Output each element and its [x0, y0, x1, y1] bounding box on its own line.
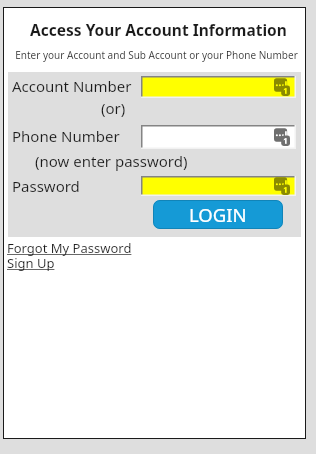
- staticText: Account Number: [12, 76, 132, 96]
- staticText: (now enter password): [35, 151, 188, 171]
- staticText: Password: [12, 176, 80, 196]
- other: Autofill saved login: [274, 128, 290, 146]
- button[interactable]: Autofill saved login: [141, 176, 296, 196]
- button[interactable]: Forgot My Password: [7, 239, 132, 257]
- other: Autofill saved login: [274, 78, 290, 96]
- staticText: Phone Number: [12, 126, 120, 146]
- button[interactable]: Autofill saved login: [141, 125, 296, 149]
- button[interactable]: Autofill saved login: [141, 76, 296, 98]
- button[interactable]: Sign Up: [7, 254, 55, 272]
- button[interactable]: LOGIN: [153, 200, 283, 229]
- staticText: (or): [101, 98, 126, 118]
- staticText: Enter your Account and Sub Account or yo…: [5, 48, 308, 62]
- staticText: LOGIN: [189, 202, 247, 227]
- staticText: Access Your Account Information: [7, 19, 310, 40]
- other: Autofill saved login: [274, 177, 290, 195]
